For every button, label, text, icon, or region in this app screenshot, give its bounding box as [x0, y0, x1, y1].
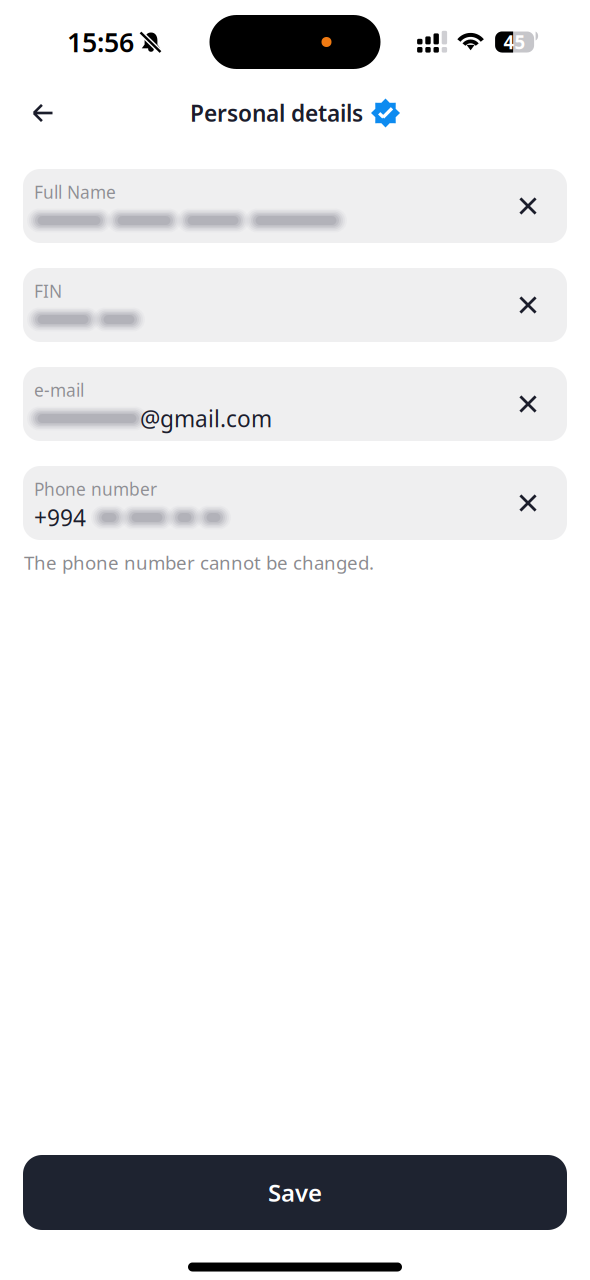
button[interactable]: Save	[23, 1155, 567, 1230]
staticText: 45	[504, 30, 526, 54]
staticText: e-mail	[34, 378, 84, 401]
button[interactable]: Full Name	[23, 169, 567, 243]
staticText: FIN	[34, 279, 62, 302]
staticText: Full Name	[34, 180, 116, 203]
staticText: 15:56	[67, 24, 134, 60]
staticText: The phone number cannot be changed.	[24, 550, 374, 575]
staticText: +994	[34, 502, 86, 533]
button[interactable]: FIN	[23, 268, 567, 342]
button[interactable]: e-mail	[23, 367, 567, 441]
button[interactable]: Phone number	[23, 466, 567, 540]
staticText: Save	[268, 1177, 322, 1208]
staticText: Personal details	[190, 98, 363, 128]
button[interactable]: Back	[15, 89, 71, 137]
staticText: Phone number	[34, 477, 157, 500]
staticText: @gmail.com	[140, 403, 272, 434]
